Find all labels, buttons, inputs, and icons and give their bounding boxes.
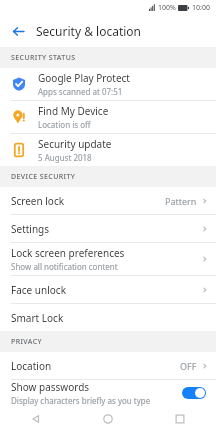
staticText: 10:00 <box>192 3 210 13</box>
button[interactable]: Face unlock <box>0 276 216 303</box>
staticText: 100% <box>158 3 176 13</box>
staticText: Smart Lock <box>11 311 64 325</box>
staticText: 5 August 2018 <box>38 152 92 163</box>
button[interactable]: Screen lock <box>0 187 216 214</box>
staticText: Lock screen preferences <box>11 246 125 260</box>
staticText: Location <box>11 359 52 373</box>
staticText: Show passwords <box>11 380 90 394</box>
button[interactable]: Lock screen preferences <box>0 243 216 275</box>
button[interactable]: Security update <box>0 134 216 166</box>
staticText: Find My Device <box>38 104 109 118</box>
staticText: Settings <box>11 222 50 236</box>
staticText: Screen lock <box>11 194 65 208</box>
staticText: PRIVACY <box>11 337 42 347</box>
button[interactable]: Settings <box>0 215 216 242</box>
button[interactable]: Google Play Protect <box>0 68 216 100</box>
staticText: Google Play Protect <box>38 71 130 85</box>
staticText: Display characters briefly as you type <box>11 395 151 406</box>
button[interactable]: Find My Device <box>0 101 216 133</box>
button[interactable]: Location <box>0 352 216 379</box>
staticText: Show all notification content <box>11 261 118 272</box>
staticText: Face unlock <box>11 283 66 297</box>
button[interactable]: Smart Lock <box>0 304 216 331</box>
button[interactable]: Back <box>0 406 72 432</box>
button[interactable]: Show passwords <box>0 380 216 406</box>
staticText: Security update <box>38 137 112 151</box>
staticText: OFF <box>180 360 197 372</box>
button[interactable]: Recent apps <box>144 406 216 432</box>
staticText: SECURITY STATUS <box>11 53 76 63</box>
button[interactable]: Home <box>72 406 144 432</box>
button[interactable]: Back <box>8 21 28 41</box>
staticText: Location is off <box>38 119 91 130</box>
staticText: Security & location <box>36 23 142 39</box>
staticText: Pattern <box>165 195 197 207</box>
staticText: DEVICE SECURITY <box>11 172 76 182</box>
button[interactable]: Show passwords toggle <box>182 387 206 399</box>
staticText: Apps scanned at 07:51 <box>38 86 123 97</box>
